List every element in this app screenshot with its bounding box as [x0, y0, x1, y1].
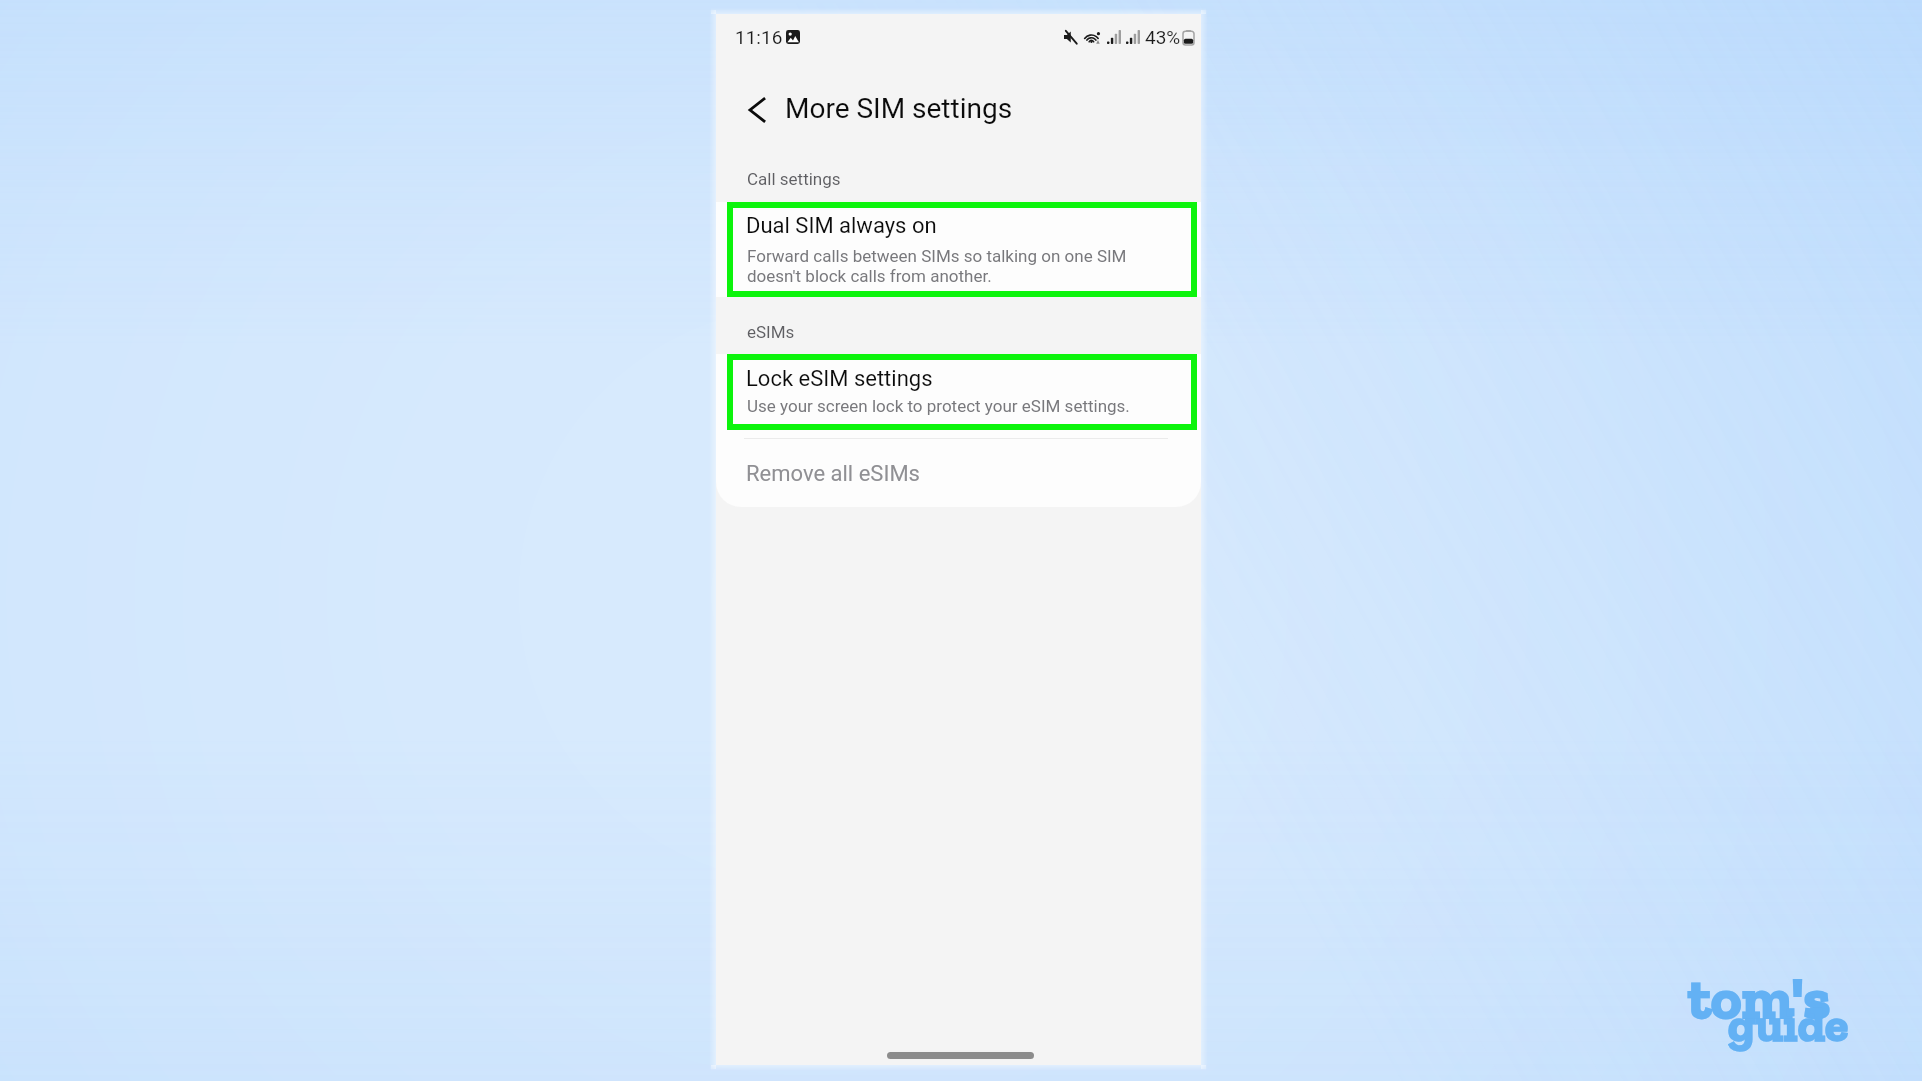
staticText: 43% [1145, 26, 1181, 48]
staticText: tom's [1688, 963, 1831, 1033]
staticText: More SIM settings [785, 92, 1013, 125]
staticText: guide [1728, 996, 1849, 1054]
staticText: Lock eSIM settings [746, 366, 933, 392]
button[interactable]: Lock eSIM settings [716, 354, 1201, 438]
staticText: eSIMs [747, 322, 795, 342]
button[interactable]: Remove all eSIMs [716, 439, 1201, 507]
button[interactable]: Navigate back [731, 84, 783, 136]
button[interactable]: Dual SIM always on [716, 202, 1201, 297]
staticText: Remove all eSIMs [746, 461, 920, 487]
staticText: Call settings [747, 169, 841, 189]
staticText: Forward calls between SIMs so talking on… [747, 246, 1127, 286]
staticText: Use your screen lock to protect your eSI… [747, 396, 1130, 416]
staticText: Dual SIM always on [746, 213, 937, 239]
staticText: 11:16 [735, 26, 783, 48]
